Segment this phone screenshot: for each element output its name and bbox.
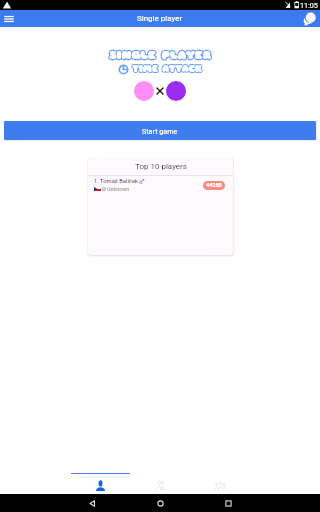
staticText: Top 10 players <box>135 162 187 171</box>
staticText: Unknown <box>107 186 130 192</box>
button[interactable]: Open navigation menu <box>3 13 15 25</box>
button[interactable]: Recent apps <box>220 495 236 511</box>
button[interactable]: Start game <box>4 121 316 140</box>
button[interactable]: Home <box>152 495 168 511</box>
staticText: SINGLE PLAYER <box>109 48 211 63</box>
button[interactable]: Chat <box>302 12 316 26</box>
staticText: TIME ATTACK <box>132 63 202 75</box>
button[interactable]: Two players tab <box>130 470 190 494</box>
button[interactable]: Single player <box>137 14 183 23</box>
staticText: Start game <box>142 127 178 135</box>
staticText: 11:05 <box>300 1 318 9</box>
staticText: SINGLE PLAYER <box>109 48 211 63</box>
staticText: 1. Tomáš Balíček <box>94 178 138 185</box>
button[interactable]: Back <box>84 495 100 511</box>
staticText: 44250 <box>206 182 222 189</box>
staticText: TIME ATTACK <box>132 63 202 75</box>
button[interactable]: 1. Tomáš Balíček <box>88 176 233 194</box>
button[interactable]: Multiplayer tab <box>190 470 250 494</box>
button[interactable]: Single player tab <box>70 470 130 494</box>
